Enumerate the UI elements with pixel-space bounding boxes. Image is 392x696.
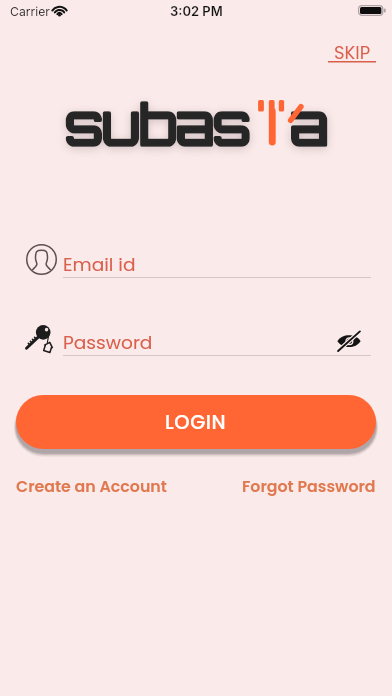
button[interactable]: Forgot Password [240, 473, 378, 499]
button[interactable]: SKIP [326, 40, 378, 66]
staticText: a [290, 89, 329, 158]
button[interactable]: Create an Account [14, 473, 169, 499]
staticText: Carrier [10, 4, 50, 19]
staticText: Email id [63, 251, 136, 277]
staticText: SKIP [334, 40, 371, 65]
staticText: a [290, 94, 329, 160]
button[interactable]: Show password [336, 328, 362, 354]
staticText: subas [65, 94, 251, 160]
staticText: Create an Account [16, 475, 167, 497]
staticText: Forgot Password [242, 475, 376, 497]
staticText: LOGIN [165, 409, 227, 436]
staticText: subas [65, 89, 251, 158]
staticText: a [290, 89, 329, 158]
button[interactable]: Password [0, 319, 392, 356]
button[interactable]: LOGIN [16, 395, 376, 449]
staticText: Password [63, 329, 153, 355]
staticText: 3:02 PM [170, 3, 223, 19]
staticText: subas [65, 89, 251, 158]
button[interactable]: Email id [0, 241, 392, 278]
